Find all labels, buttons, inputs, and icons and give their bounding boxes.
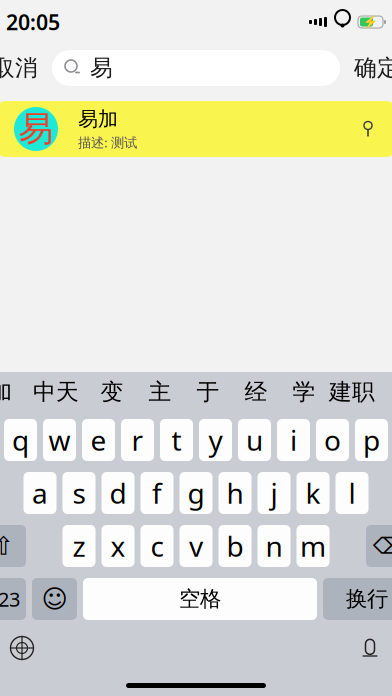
button[interactable]: 学 <box>280 374 328 410</box>
button[interactable]: m <box>296 525 329 567</box>
staticText: x <box>110 527 125 565</box>
staticText: 于 <box>196 378 219 406</box>
button[interactable]: Emoji <box>32 578 77 620</box>
staticText: ⚡ <box>363 15 378 29</box>
staticText: w <box>48 421 70 459</box>
button[interactable]: p <box>355 419 388 461</box>
staticText: 换行 <box>346 586 388 612</box>
button[interactable]: 易 <box>0 101 392 157</box>
staticText: 建职 <box>329 378 375 406</box>
staticText: 20:05 <box>6 8 60 36</box>
staticText: c <box>150 527 163 565</box>
staticText: 学 <box>292 378 315 406</box>
button[interactable]: 取消 <box>0 48 42 88</box>
button[interactable]: 换行 <box>323 578 392 620</box>
staticText: 加 <box>0 378 12 406</box>
staticText: 主 <box>148 378 171 406</box>
staticText: h <box>226 474 243 512</box>
staticText: m <box>300 527 326 565</box>
button[interactable]: b <box>218 525 251 567</box>
button[interactable]: o <box>316 419 349 461</box>
staticText: j <box>270 474 277 512</box>
staticText: o <box>324 421 341 459</box>
staticText: v <box>189 527 203 565</box>
staticText: 易加 <box>78 107 118 131</box>
button[interactable]: l <box>335 472 368 514</box>
staticText: e <box>90 421 106 459</box>
button[interactable]: 空格 <box>83 578 317 620</box>
staticText: i <box>290 421 297 459</box>
button[interactable]: s <box>62 472 95 514</box>
button[interactable]: 123 <box>0 578 26 620</box>
button[interactable]: c <box>140 525 173 567</box>
staticText: 经 <box>244 378 267 406</box>
button[interactable]: 加 <box>0 374 24 410</box>
staticText: r <box>131 421 143 459</box>
staticText: ⇧ <box>0 532 14 560</box>
staticText: s <box>72 474 85 512</box>
staticText: z <box>72 527 85 565</box>
button[interactable]: z <box>62 525 95 567</box>
staticText: l <box>348 474 355 512</box>
staticText: 确定 <box>354 54 392 82</box>
button[interactable]: q <box>4 419 37 461</box>
staticText: y <box>208 421 222 459</box>
staticText: 易 <box>90 54 113 82</box>
staticText: q <box>12 421 29 459</box>
button[interactable]: 变 <box>88 374 136 410</box>
button[interactable]: 于 <box>184 374 232 410</box>
staticText: 变 <box>100 378 123 406</box>
staticText: ☺ <box>41 585 67 613</box>
staticText: 123 <box>0 586 20 612</box>
staticText: g <box>187 474 204 512</box>
button[interactable]: 主 <box>136 374 184 410</box>
staticText: f <box>152 474 162 512</box>
staticText: p <box>363 421 380 459</box>
button[interactable]: 语音输入 <box>348 628 392 668</box>
button[interactable]: Delete <box>366 525 392 567</box>
staticText: k <box>305 474 320 512</box>
staticText: a <box>32 474 48 512</box>
button[interactable]: 切换键盘 <box>0 628 44 668</box>
button[interactable]: n <box>257 525 290 567</box>
button[interactable]: f <box>140 472 173 514</box>
button[interactable]: t <box>160 419 193 461</box>
button[interactable]: 建职 <box>328 374 376 410</box>
staticText: ⌫ <box>372 533 392 559</box>
button[interactable]: 确定 <box>350 48 392 88</box>
button[interactable]: j <box>257 472 290 514</box>
button[interactable]: w <box>43 419 76 461</box>
button[interactable]: 经 <box>232 374 280 410</box>
button[interactable]: d <box>101 472 134 514</box>
button[interactable]: Shift <box>0 525 26 567</box>
staticText: d <box>109 474 126 512</box>
button[interactable]: x <box>101 525 134 567</box>
staticText: t <box>171 421 181 459</box>
button[interactable]: k <box>296 472 329 514</box>
staticText: 取消 <box>0 54 38 82</box>
button[interactable]: u <box>238 419 271 461</box>
button[interactable]: a <box>23 472 56 514</box>
staticText: n <box>265 527 282 565</box>
staticText: 描述: 测试 <box>78 133 137 151</box>
staticText: 中天 <box>33 378 79 406</box>
button[interactable]: e <box>82 419 115 461</box>
staticText: 空格 <box>179 586 221 612</box>
button[interactable]: v <box>179 525 212 567</box>
button[interactable]: i <box>277 419 310 461</box>
button[interactable]: g <box>179 472 212 514</box>
staticText: 易 <box>18 108 53 150</box>
button[interactable]: r <box>121 419 154 461</box>
staticText: u <box>246 421 263 459</box>
button[interactable]: h <box>218 472 251 514</box>
button[interactable]: 中天 <box>24 374 88 410</box>
staticText: b <box>226 527 243 565</box>
button[interactable]: y <box>199 419 232 461</box>
